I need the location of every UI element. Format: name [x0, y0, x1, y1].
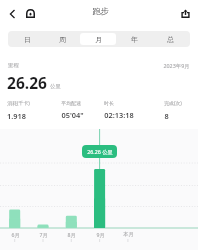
staticText: 26.26 — [7, 72, 47, 93]
staticText: 月 — [95, 35, 102, 44]
button[interactable]: Home — [21, 4, 40, 23]
staticText: 1.918 — [7, 111, 26, 121]
staticText: 7月 — [39, 231, 48, 238]
button[interactable]: 年 — [116, 33, 152, 45]
staticText: 跑步 — [92, 6, 109, 16]
staticText: 公里 — [50, 83, 61, 90]
staticText: 里程 — [8, 62, 19, 69]
staticText: 9月 — [96, 231, 105, 238]
staticText: 02:13:18 — [104, 110, 134, 120]
staticText: 05'04" — [61, 110, 84, 120]
staticText: 消耗(千卡) — [7, 100, 30, 107]
staticText: 平均配速 — [61, 100, 81, 106]
staticText: 6月 — [11, 231, 20, 238]
button[interactable]: Back — [2, 4, 21, 23]
staticText: 8月 — [67, 231, 76, 238]
staticText: 本月 — [123, 231, 134, 238]
staticText: 年 — [131, 35, 138, 44]
button[interactable]: Share — [176, 4, 195, 23]
staticText: 完成(次) — [164, 100, 182, 107]
button[interactable]: 月 — [80, 33, 116, 45]
button[interactable]: 总 — [152, 33, 188, 45]
staticText: 周 — [59, 35, 66, 44]
button[interactable]: 周 — [45, 33, 80, 45]
staticText: 日 — [24, 35, 31, 44]
staticText: 时长 — [104, 100, 114, 106]
button[interactable]: 日 — [10, 33, 45, 45]
staticText: 26.26 公里 — [87, 148, 113, 155]
staticText: 8 — [164, 111, 169, 121]
staticText: 2023年9月 — [163, 62, 190, 69]
staticText: 总 — [167, 35, 174, 44]
